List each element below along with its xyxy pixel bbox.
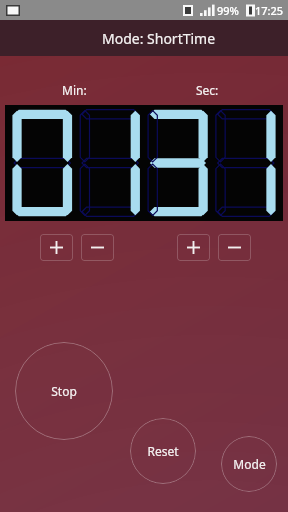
button[interactable]: Stop [15, 342, 113, 440]
staticText: Stop [51, 383, 77, 399]
staticText: 17:25 [255, 3, 284, 18]
staticText: Min: [62, 82, 87, 98]
button[interactable]: Mode [221, 436, 277, 492]
button[interactable]: Decrease [218, 234, 251, 261]
staticText: Mode: ShortTime [102, 29, 216, 48]
staticText: 99% [217, 3, 239, 18]
button[interactable]: Reset [130, 418, 196, 484]
button[interactable]: Increase [177, 234, 210, 261]
staticText: Reset [147, 443, 179, 459]
staticText: Sec: [196, 82, 219, 98]
staticText: Mode [233, 456, 266, 472]
button[interactable]: Increase [40, 234, 73, 261]
button[interactable]: Decrease [81, 234, 114, 261]
